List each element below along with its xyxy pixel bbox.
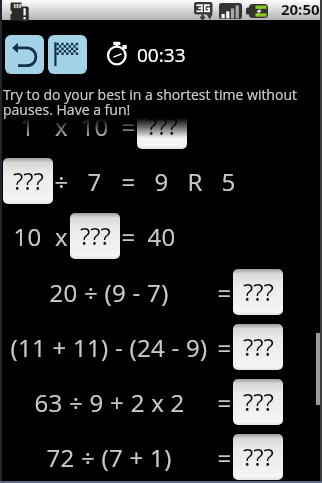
staticText: 40 <box>147 220 176 253</box>
button[interactable]: Finish <box>48 35 87 74</box>
staticText: = <box>121 110 136 143</box>
staticText: x <box>55 220 68 253</box>
staticText: ??? <box>147 109 178 142</box>
staticText: = <box>217 331 232 364</box>
staticText: 1 <box>20 110 35 143</box>
staticText: = <box>121 220 136 253</box>
button[interactable]: ??? <box>233 379 283 425</box>
staticText: 10 <box>80 110 109 143</box>
button[interactable]: ??? <box>233 324 283 370</box>
staticText: R <box>187 165 203 198</box>
button[interactable]: ??? <box>137 103 187 149</box>
staticText: 00:33 <box>137 42 186 68</box>
staticText: (11 + 11) - (24 - 9) <box>10 331 208 364</box>
button[interactable]: Undo <box>5 35 44 74</box>
button[interactable]: ??? <box>3 158 53 204</box>
button[interactable]: ??? <box>233 434 283 480</box>
staticText: = <box>217 386 232 419</box>
staticText: ??? <box>243 275 274 308</box>
staticText: = <box>121 165 136 198</box>
staticText: Try to do your best in a shortest time w… <box>3 85 305 119</box>
staticText: 5 <box>221 165 236 198</box>
staticText: ??? <box>243 330 274 363</box>
staticText: ÷ <box>54 165 69 198</box>
staticText: 72 ÷ (7 + 1) <box>46 441 172 474</box>
staticText: 9 <box>154 165 169 198</box>
staticText: 20:50 <box>281 0 320 19</box>
staticText: ??? <box>80 219 111 252</box>
button[interactable]: ??? <box>233 269 283 315</box>
staticText: ??? <box>13 164 44 197</box>
staticText: = <box>217 276 232 309</box>
staticText: ??? <box>243 440 274 473</box>
staticText: = <box>217 441 232 474</box>
staticText: 63 ÷ 9 + 2 x 2 <box>34 386 185 419</box>
staticText: ??? <box>243 385 274 418</box>
staticText: 10 <box>13 220 42 253</box>
staticText: 7 <box>87 165 102 198</box>
staticText: x <box>55 110 68 143</box>
button[interactable]: ??? <box>70 213 120 259</box>
staticText: 20 ÷ (9 - 7) <box>49 276 169 309</box>
